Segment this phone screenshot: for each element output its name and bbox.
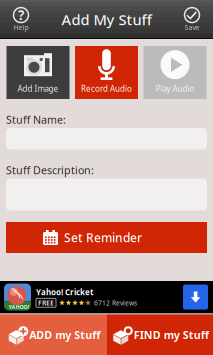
staticText: FREE: [38, 298, 54, 307]
button[interactable]: ADD my Stuff: [0, 314, 106, 355]
staticText: Add Image: [17, 83, 58, 94]
staticText: Save: [184, 23, 199, 32]
button[interactable]: Record Audio: [75, 46, 138, 99]
staticText: Set Reminder: [64, 229, 142, 245]
staticText: ?: [18, 6, 24, 24]
staticText: Add My Stuff: [61, 10, 151, 29]
staticText: Play Audio: [155, 83, 194, 94]
button[interactable]: Help: [0, 0, 42, 38]
button[interactable]: YAHOO!: [0, 281, 213, 313]
button[interactable]: Play Audio: [143, 46, 206, 99]
staticText: Record Audio: [81, 83, 132, 94]
staticText: YAHOO!: [8, 303, 29, 311]
staticText: FIND my Stuff: [134, 328, 209, 342]
staticText: Help: [13, 23, 28, 32]
button[interactable]: FIND my Stuff: [106, 314, 213, 355]
button[interactable]: Set Reminder: [6, 222, 207, 253]
staticText: ADD my Stuff: [29, 328, 100, 342]
staticText: Stuff Description:: [6, 163, 94, 177]
button[interactable]: Add Image: [6, 46, 69, 99]
button[interactable]: Save: [171, 0, 213, 38]
staticText: Stuff Name:: [6, 112, 66, 127]
staticText: 6712 Reviews: [94, 298, 137, 307]
staticText: Yahoo! Cricket: [36, 287, 93, 297]
